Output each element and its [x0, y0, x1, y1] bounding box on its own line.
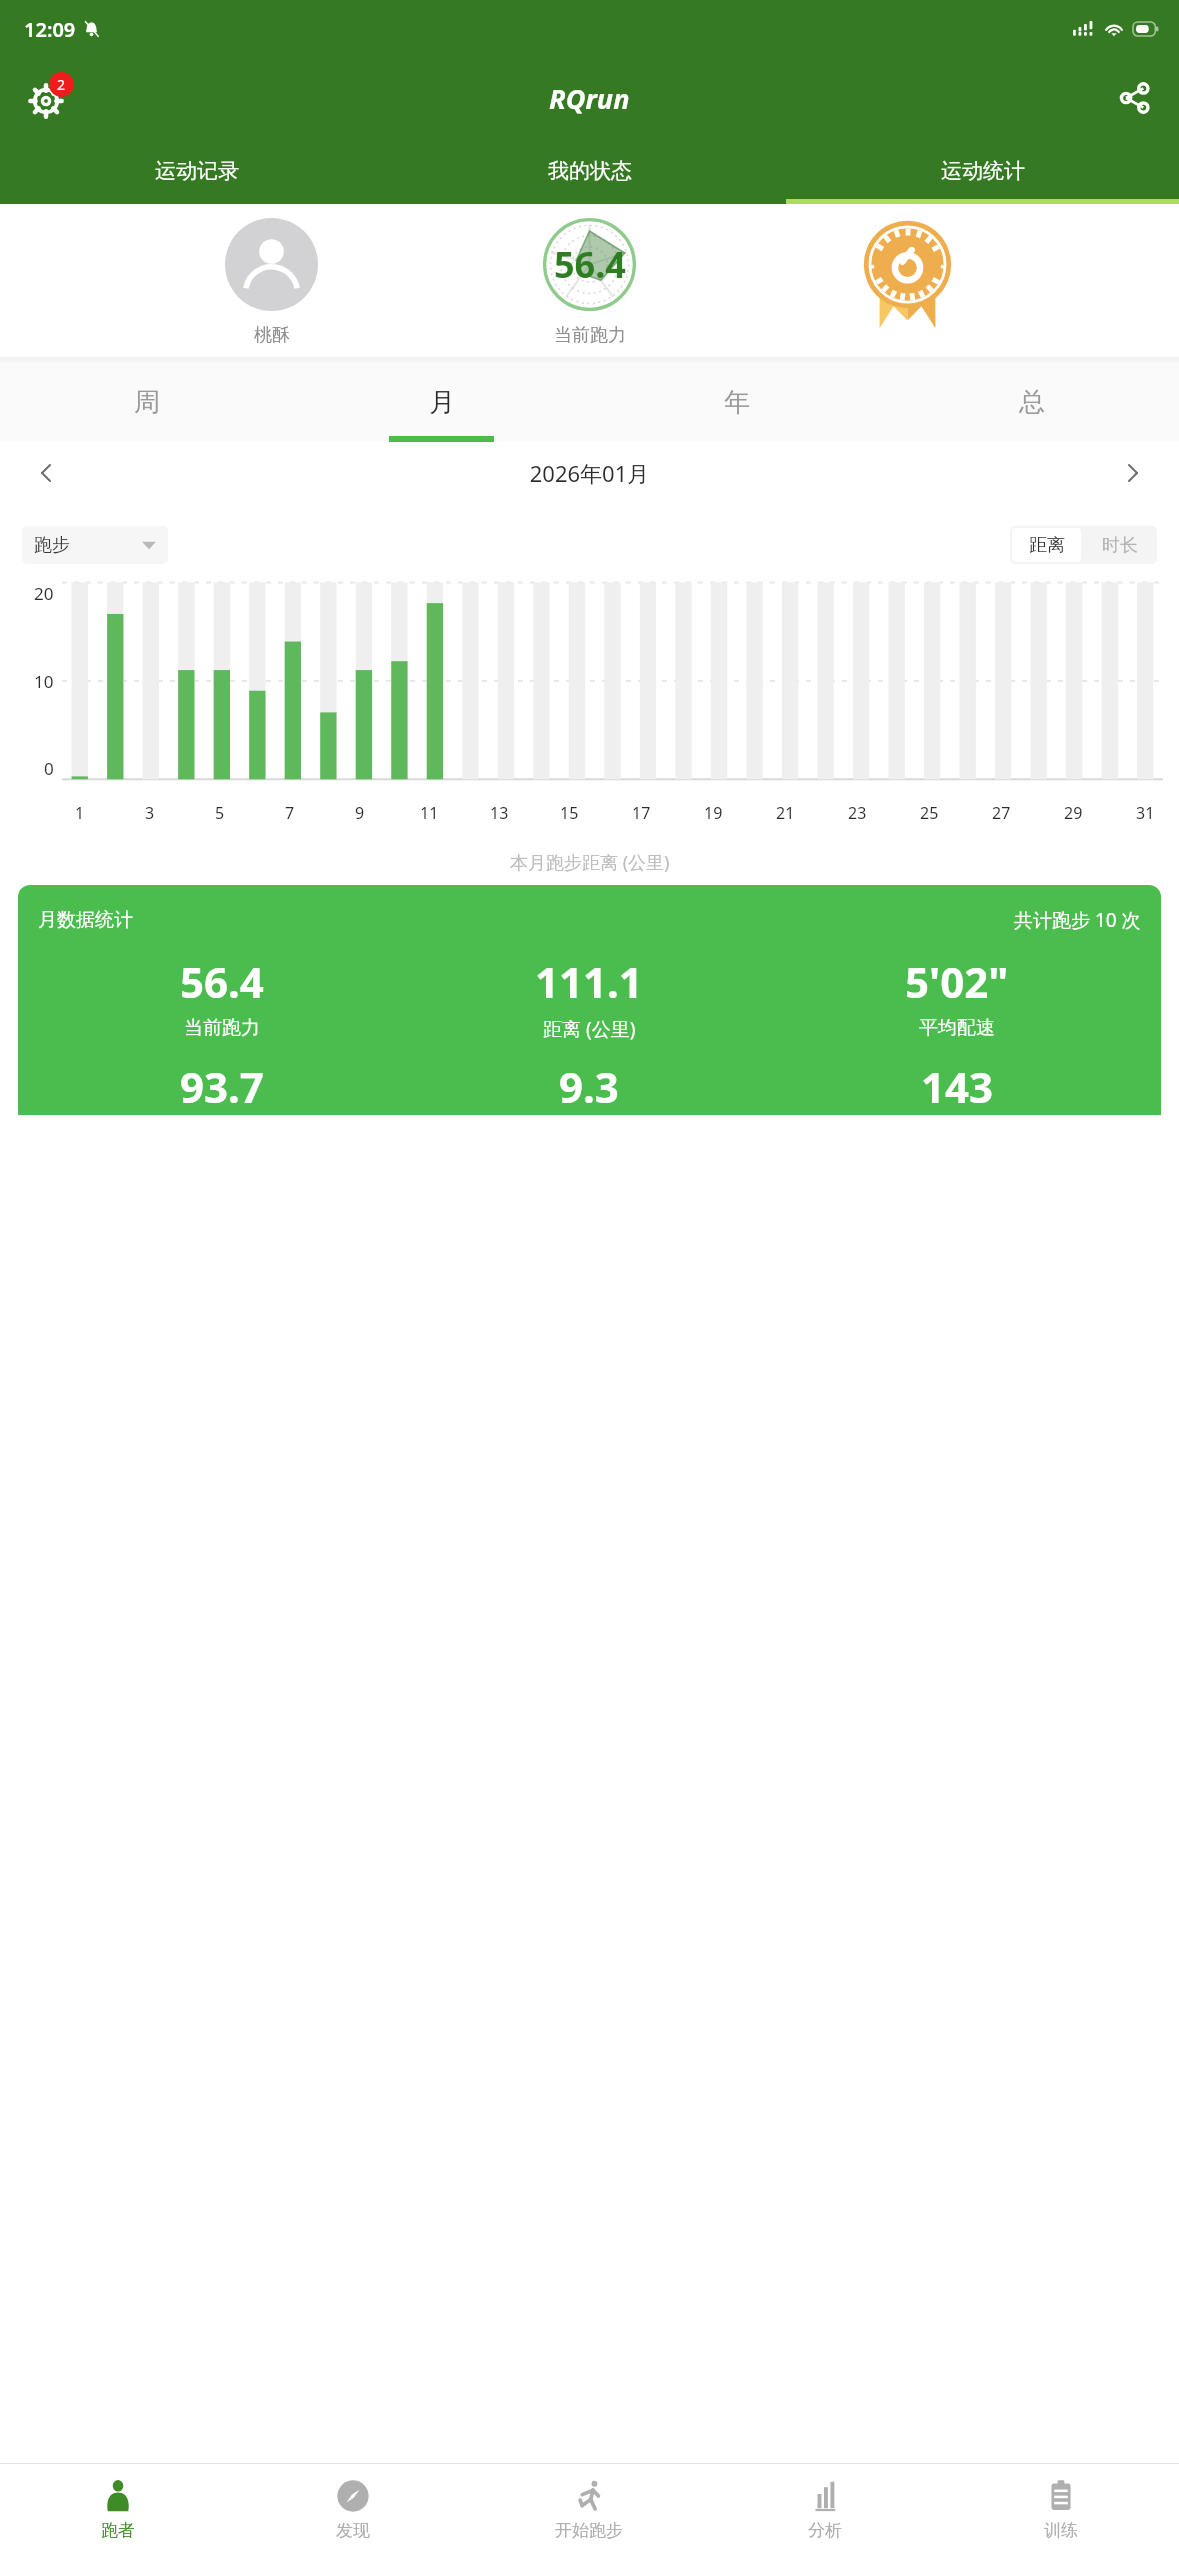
staticText: 当前跑力	[184, 1016, 260, 1040]
staticText: 143	[921, 1058, 994, 1115]
staticText: 111.1	[535, 953, 643, 1010]
staticText: 0	[44, 757, 54, 780]
button[interactable]: 运动记录	[0, 138, 393, 204]
staticText: 运动记录	[155, 158, 239, 184]
staticText: 7	[285, 802, 295, 824]
staticText: 当前跑力	[554, 324, 626, 347]
staticText: 31	[1136, 802, 1155, 824]
button[interactable]	[861, 218, 954, 330]
button[interactable]: 桃酥	[225, 218, 318, 347]
staticText: 5	[215, 802, 225, 824]
button[interactable]: 年	[589, 362, 884, 442]
staticText: 56.4	[180, 953, 264, 1010]
button[interactable]: 跑者	[0, 2464, 235, 2556]
staticText: 2026年01月	[70, 458, 1109, 488]
button[interactable]: 运动统计	[786, 138, 1179, 204]
button[interactable]: 距离	[1012, 528, 1081, 562]
staticText: 周	[134, 386, 160, 419]
staticText: 17	[632, 802, 651, 824]
staticText: RQrun	[549, 80, 630, 117]
staticText: 5'02"	[905, 953, 1009, 1010]
button[interactable]: 总	[884, 362, 1179, 442]
staticText: 开始跑步	[555, 2520, 623, 2541]
staticText: 月数据统计	[38, 908, 133, 932]
staticText: 我的状态	[548, 158, 632, 184]
staticText: 跑步	[34, 534, 70, 557]
staticText: 共计跑步 10 次	[1014, 907, 1141, 933]
staticText: 19	[704, 802, 723, 824]
staticText: 3	[145, 802, 155, 824]
staticText: 运动统计	[941, 158, 1025, 184]
button[interactable]: Settings	[14, 66, 78, 130]
staticText: 13	[490, 802, 509, 824]
button[interactable]: 开始跑步	[471, 2464, 707, 2556]
staticText: 2	[57, 75, 66, 94]
button[interactable]: 周	[0, 362, 294, 442]
button[interactable]: 发现	[235, 2464, 471, 2556]
button[interactable]: 时长	[1083, 526, 1157, 564]
staticText: 15	[560, 802, 579, 824]
button[interactable]: 训练	[943, 2464, 1179, 2556]
staticText: 距离	[1029, 534, 1065, 557]
staticText: 10	[34, 670, 54, 693]
staticText: 训练	[1044, 2520, 1078, 2541]
staticText: 跑者	[101, 2520, 135, 2541]
staticText: 12:09	[24, 16, 76, 43]
staticText: 桃酥	[254, 324, 290, 347]
button[interactable]: 我的状态	[393, 138, 786, 204]
staticText: 月	[429, 386, 455, 419]
staticText: 1	[75, 802, 85, 824]
staticText: 56.4	[554, 240, 626, 289]
button[interactable]: 分析	[707, 2464, 943, 2556]
button[interactable]: Previous month	[22, 449, 70, 497]
staticText: 本月跑步距离 (公里)	[510, 850, 670, 875]
staticText: 9.3	[559, 1058, 619, 1115]
staticText: 时长	[1102, 534, 1138, 557]
button[interactable]: 56.4	[543, 218, 636, 347]
staticText: 20	[34, 582, 54, 605]
staticText: 距离 (公里)	[543, 1016, 636, 1042]
button[interactable]: 月数据统计	[18, 885, 1161, 1115]
staticText: 29	[1064, 802, 1083, 824]
staticText: 11	[420, 802, 439, 824]
staticText: 9	[355, 802, 365, 824]
staticText: 93.7	[180, 1058, 264, 1115]
staticText: 分析	[808, 2520, 842, 2541]
staticText: 25	[920, 802, 939, 824]
staticText: 平均配速	[919, 1016, 995, 1040]
staticText: 21	[776, 802, 795, 824]
staticText: 23	[848, 802, 867, 824]
button[interactable]: Next month	[1109, 449, 1157, 497]
button[interactable]: 跑步	[22, 526, 168, 564]
staticText: 发现	[336, 2520, 370, 2541]
button[interactable]: 月	[294, 362, 589, 442]
button[interactable]: Share	[1107, 70, 1163, 126]
staticText: 总	[1019, 386, 1045, 419]
staticText: 年	[724, 386, 750, 419]
staticText: 27	[992, 802, 1011, 824]
